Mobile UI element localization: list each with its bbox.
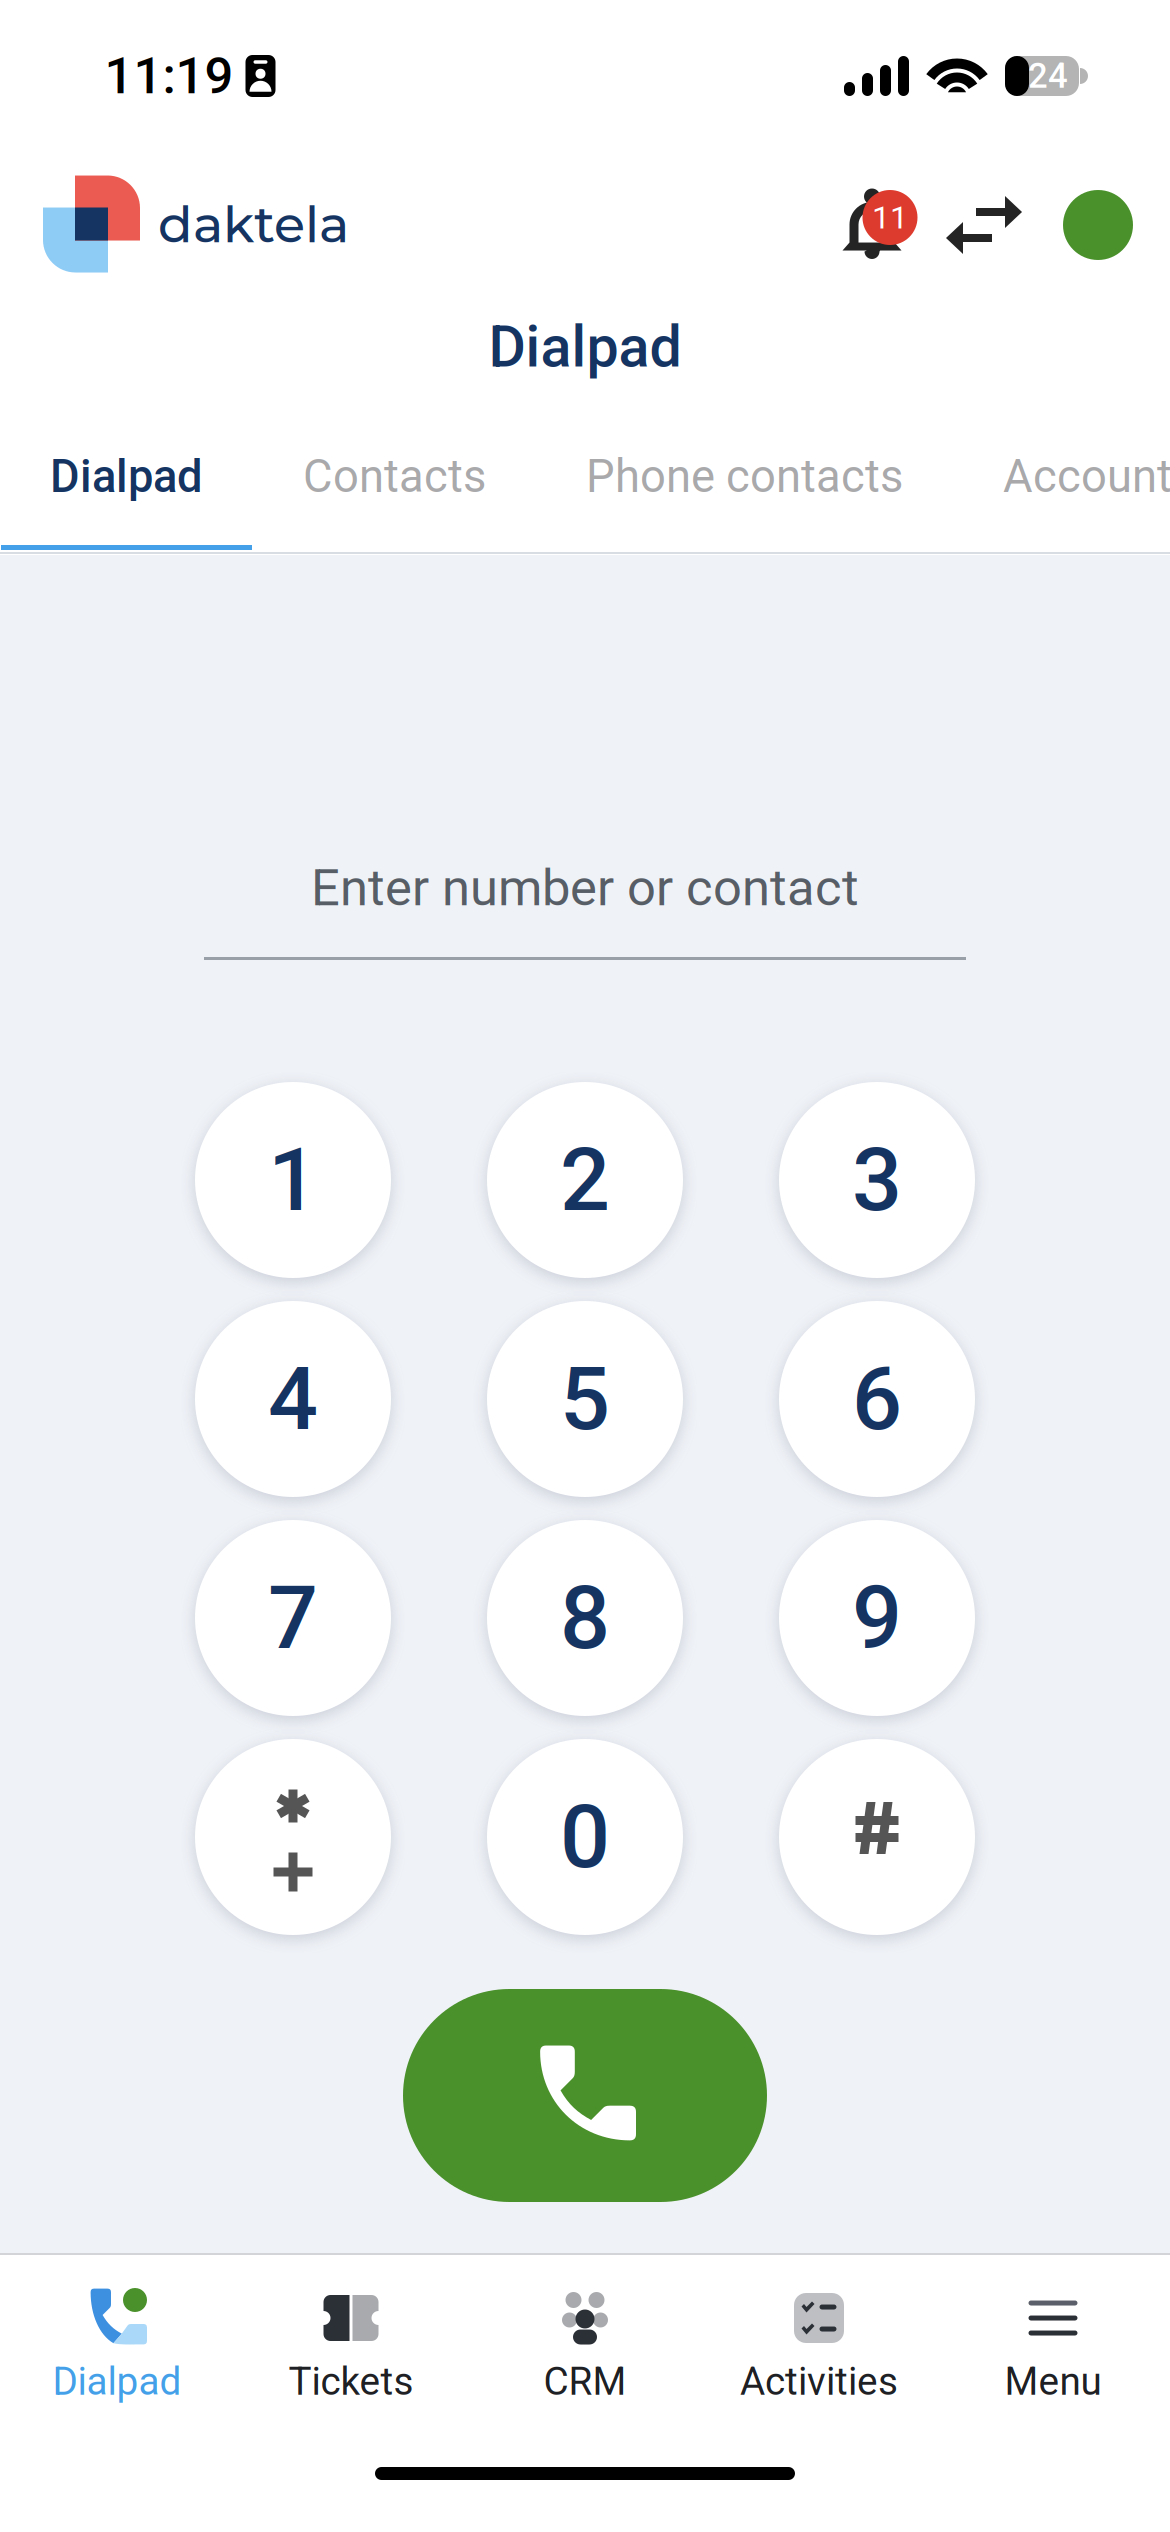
staticText: 3 — [852, 1128, 902, 1231]
button[interactable]: 8 — [487, 1520, 683, 1716]
button[interactable]: CRM — [468, 2255, 702, 2532]
staticText: 1 — [268, 1128, 318, 1231]
button[interactable]: daktela — [43, 175, 349, 272]
staticText: Dialpad — [488, 313, 681, 381]
staticText: 2 — [560, 1128, 610, 1231]
staticText: Phone contacts — [586, 450, 903, 503]
staticText: 6 — [852, 1347, 902, 1450]
staticText: Dialpad — [52, 2359, 181, 2404]
button[interactable]: 6 — [779, 1301, 975, 1497]
staticText: 11 — [872, 199, 908, 236]
staticText: 9 — [852, 1566, 902, 1669]
staticText: 7 — [268, 1566, 318, 1669]
button[interactable]: Dialpad — [0, 2255, 234, 2532]
button[interactable]: Menu — [936, 2255, 1170, 2532]
button[interactable]: Notifications — [842, 188, 917, 261]
button[interactable]: Contacts — [253, 424, 536, 552]
button[interactable]: Agent status — [1063, 190, 1133, 260]
button[interactable]: Phone contacts — [536, 424, 953, 552]
button[interactable] — [779, 1739, 975, 1935]
staticText: Tickets — [288, 2359, 413, 2404]
staticText: CRM — [543, 2359, 626, 2404]
staticText: 5 — [560, 1347, 610, 1450]
staticText: Menu — [1004, 2359, 1101, 2404]
button[interactable]: Transfer calls — [946, 196, 1022, 254]
staticText: 11:19 — [104, 46, 233, 106]
button[interactable] — [195, 1739, 391, 1935]
button[interactable]: Dialpad — [0, 424, 253, 552]
staticText: 4 — [268, 1347, 318, 1450]
button[interactable]: 0 — [487, 1739, 683, 1935]
button[interactable]: 4 — [195, 1301, 391, 1497]
staticText: Activities — [740, 2359, 898, 2404]
staticText: 8 — [560, 1566, 610, 1669]
staticText: Enter number or contact — [311, 858, 859, 918]
staticText: 0 — [560, 1785, 610, 1888]
staticText: Accounts — [1003, 450, 1170, 503]
button[interactable]: Activities — [702, 2255, 936, 2532]
button[interactable]: 2 — [487, 1082, 683, 1278]
button[interactable]: 5 — [487, 1301, 683, 1497]
button[interactable]: Call — [403, 1989, 767, 2202]
button[interactable]: 7 — [195, 1520, 391, 1716]
staticText: Contacts — [303, 450, 486, 503]
staticText: 24 — [1028, 56, 1068, 96]
button[interactable]: 9 — [779, 1520, 975, 1716]
staticText: Dialpad — [50, 450, 203, 503]
button[interactable]: Accounts — [953, 424, 1170, 552]
button[interactable]: Tickets — [234, 2255, 468, 2532]
button[interactable]: 3 — [779, 1082, 975, 1278]
staticText: daktela — [158, 193, 349, 255]
button[interactable]: 1 — [195, 1082, 391, 1278]
